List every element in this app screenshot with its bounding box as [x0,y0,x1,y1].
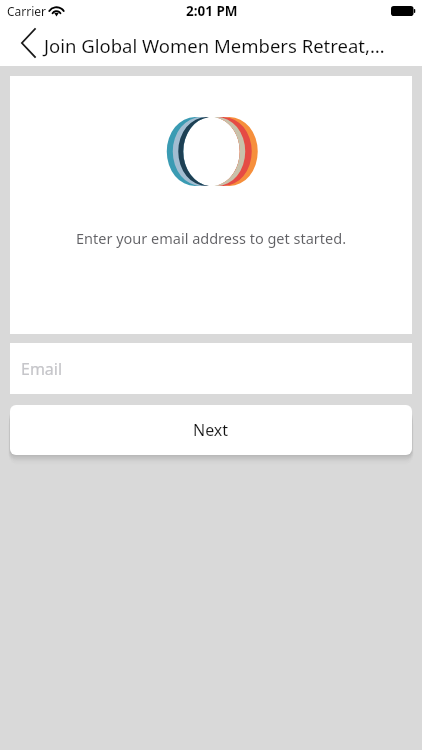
button[interactable]: Next [10,405,412,455]
staticText: Email [21,358,63,380]
staticText: Join Global Women Members Retreat,… [44,33,385,58]
button[interactable]: Back [0,24,40,66]
staticText: 2:01 PM [186,2,238,20]
staticText: Next [193,419,229,441]
staticText: Enter your email address to get started. [10,228,412,248]
staticText: Carrier [7,3,47,19]
button[interactable]: Email [10,343,412,394]
